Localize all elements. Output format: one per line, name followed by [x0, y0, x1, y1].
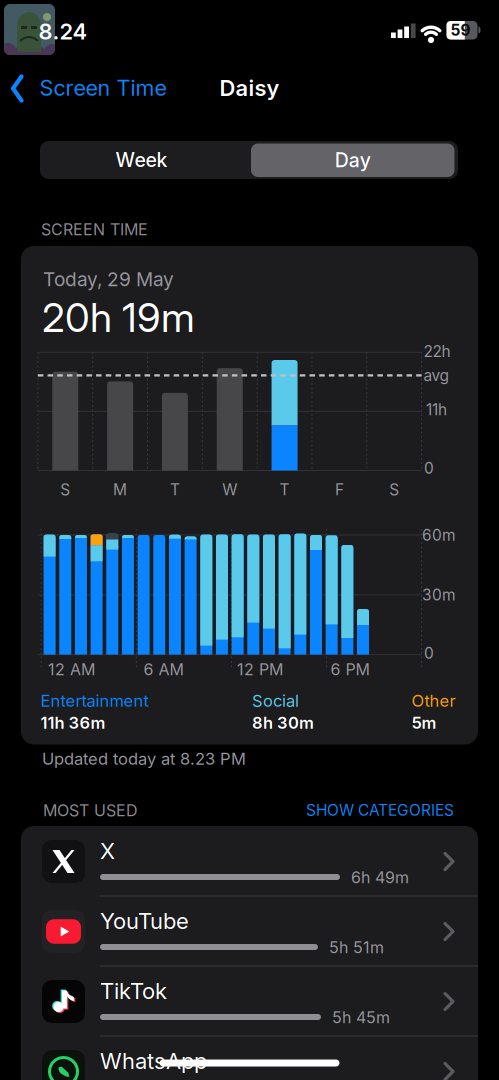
staticText: 0 [424, 644, 434, 662]
button[interactable]: YouTube [21, 896, 478, 966]
staticText: 6 AM [143, 660, 183, 679]
staticText: TikTok [100, 978, 167, 1004]
button[interactable]: Week [38, 141, 244, 179]
staticText: 20h 19m [42, 294, 195, 341]
staticText: Week [115, 149, 167, 171]
button[interactable]: TikTok [21, 966, 478, 1036]
button[interactable]: Screen Time [0, 0, 180, 110]
staticText: 60m [422, 526, 456, 544]
staticText: avg [423, 366, 448, 384]
staticText: YouTube [100, 908, 189, 934]
staticText: 59 [450, 21, 470, 39]
staticText: 8h 30m [252, 713, 314, 732]
staticText: Entertainment [40, 691, 148, 710]
staticText: F [335, 480, 344, 499]
staticText: 6 PM [330, 660, 369, 679]
staticText: W [222, 480, 237, 499]
staticText: Daisy [219, 75, 279, 101]
staticText: S [389, 480, 399, 499]
staticText: S [60, 480, 70, 499]
button[interactable]: X [21, 826, 478, 896]
staticText: 11h [426, 401, 447, 419]
staticText: 12 AM [48, 660, 95, 679]
staticText: WhatsApp [100, 1048, 207, 1074]
staticText: Updated today at 8.23 PM [42, 749, 246, 768]
staticText: Today, 29 May [43, 268, 174, 290]
staticText: Social [252, 691, 299, 710]
button[interactable]: SHOW CATEGORIES [306, 801, 454, 819]
button[interactable]: Day [251, 143, 454, 177]
staticText: MOST USED [43, 801, 138, 820]
staticText: T [280, 480, 290, 499]
staticText: Screen Time [39, 75, 166, 101]
staticText: T [170, 480, 180, 499]
staticText: SCREEN TIME [41, 220, 148, 239]
staticText: 0 [424, 459, 434, 477]
staticText: 8.24 [38, 19, 87, 44]
staticText: 6h 49m [351, 868, 409, 887]
staticText: Day [335, 149, 371, 172]
staticText: 11h 36m [40, 713, 105, 732]
staticText: 22h [423, 342, 450, 360]
staticText: 5m [411, 713, 436, 732]
staticText: 30m [422, 586, 456, 604]
staticText: M [113, 480, 127, 499]
staticText: 12 PM [237, 660, 283, 679]
staticText: 5h 51m [329, 938, 384, 957]
staticText: SHOW CATEGORIES [306, 801, 454, 819]
staticText: 5h 45m [332, 1008, 390, 1027]
staticText: X [100, 838, 115, 864]
button[interactable]: WhatsApp [21, 1036, 478, 1080]
staticText: Other [411, 691, 455, 710]
